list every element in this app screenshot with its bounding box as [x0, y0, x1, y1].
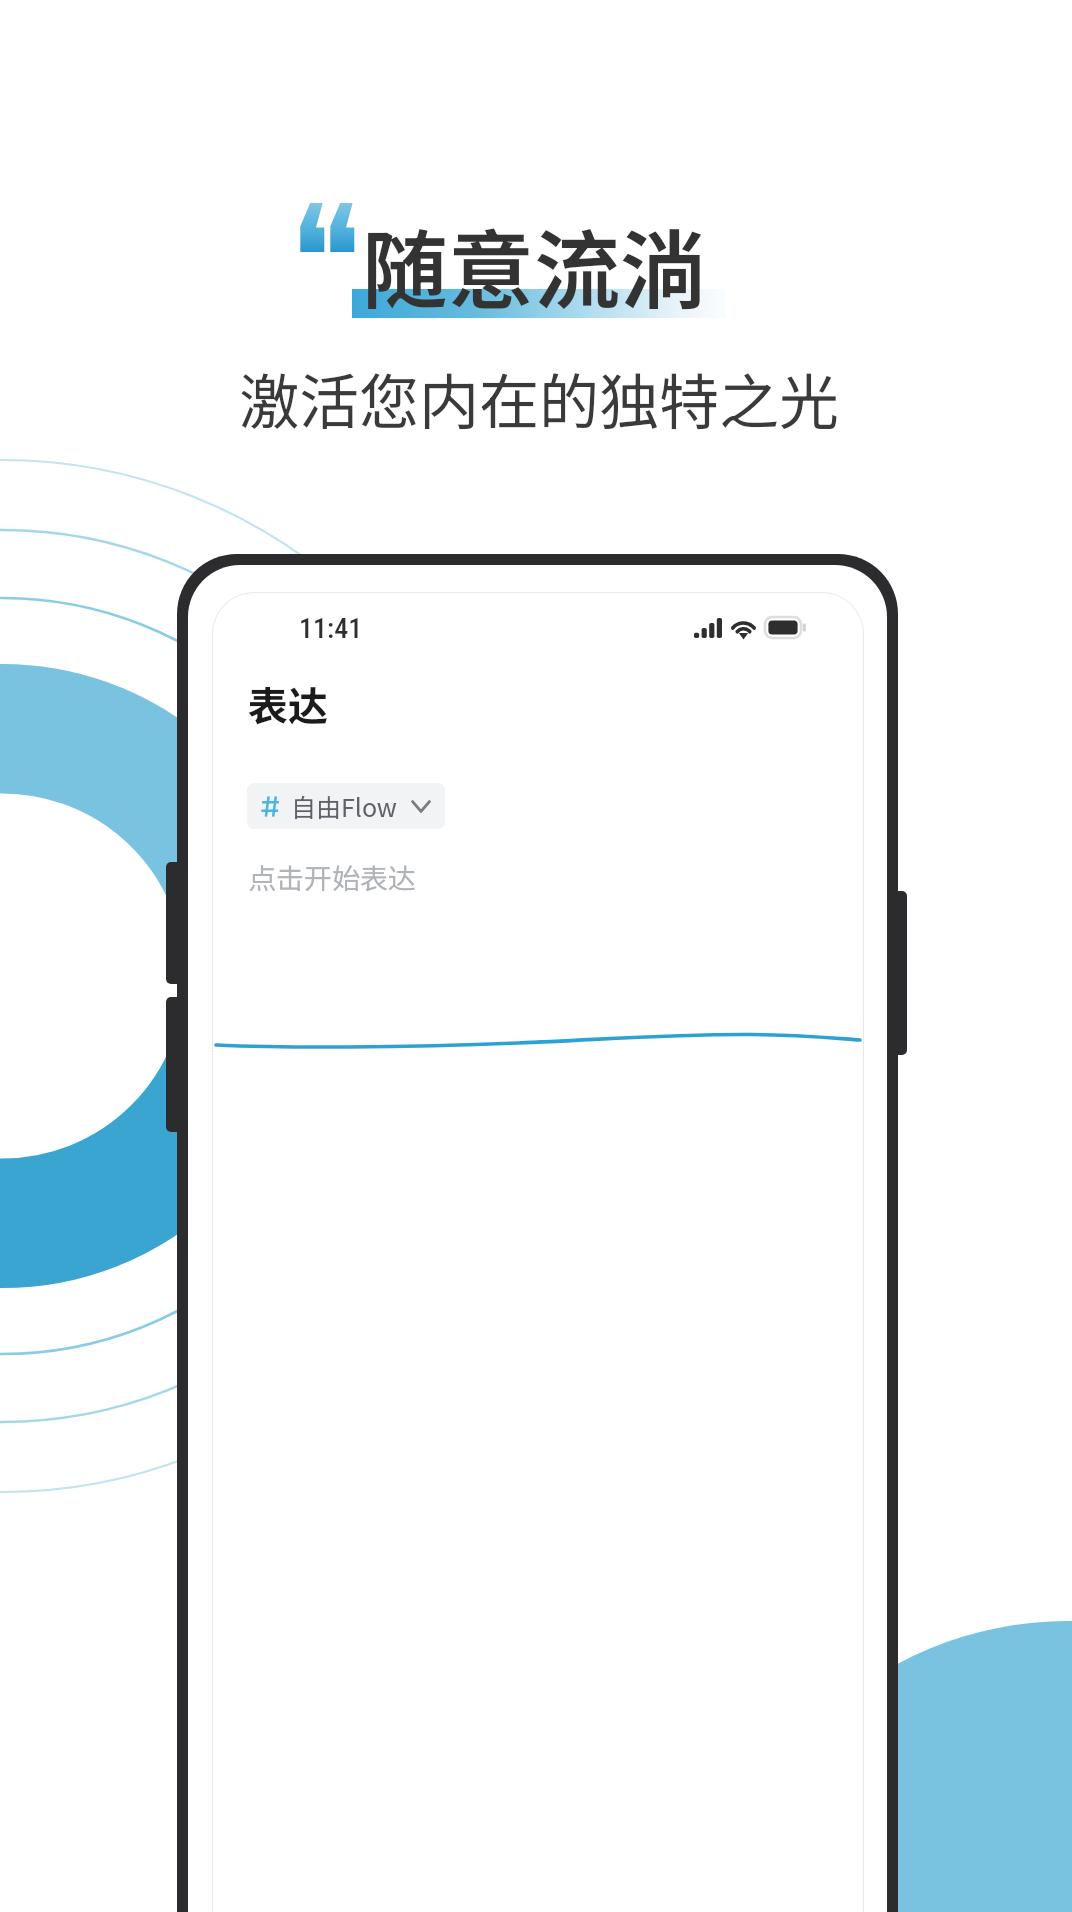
- staticText: 自由Flow: [291, 788, 397, 824]
- staticText: 表达: [248, 675, 328, 733]
- staticText: 激活您内在的独特之光: [239, 354, 839, 441]
- staticText: 点击开始表达: [248, 857, 417, 898]
- button[interactable]: 选择话题 自由Flow: [247, 783, 445, 829]
- staticText: 11:41: [299, 612, 363, 645]
- staticText: 随意流淌: [362, 202, 706, 327]
- button[interactable]: 点击开始表达: [212, 844, 864, 1022]
